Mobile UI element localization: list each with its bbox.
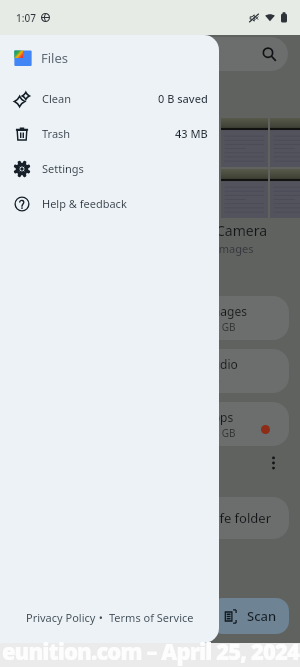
staticText: Safe folder: [205, 509, 272, 527]
button[interactable]: Audio: [155, 349, 289, 393]
button[interactable]: Trash: [0, 116, 219, 151]
staticText: 43 MB: [175, 126, 208, 141]
button[interactable]: Help & feedback: [0, 186, 219, 221]
button[interactable]: Clean: [0, 81, 219, 116]
staticText: 1.8 GB: [205, 426, 236, 440]
button[interactable]: Apps: [155, 402, 289, 446]
staticText: Trash: [42, 126, 71, 141]
staticText: Camera: [216, 221, 268, 240]
button[interactable]: Scan: [210, 598, 289, 634]
staticText: 0 B: [205, 373, 220, 387]
button[interactable]: Privacy Policy: [26, 610, 96, 625]
staticText: 1.6 GB: [205, 320, 236, 334]
button[interactable]: Search: [12, 37, 288, 71]
staticText: Files: [41, 49, 69, 67]
staticText: Settings: [42, 161, 84, 176]
staticText: Apps: [205, 409, 234, 425]
button[interactable]: Settings: [0, 151, 219, 186]
staticText: 0 B saved: [158, 91, 208, 106]
staticText: eunition.com – April 25, 2024: [1, 636, 299, 666]
staticText: Help & feedback: [42, 196, 127, 211]
button[interactable]: Images: [155, 296, 289, 340]
staticText: images: [216, 241, 254, 256]
staticText: Images: [205, 303, 247, 319]
button[interactable]: More options: [268, 455, 279, 471]
staticText: Clean: [42, 91, 71, 106]
staticText: Scan: [247, 607, 277, 625]
button[interactable]: Terms of Service: [109, 610, 194, 625]
button[interactable]: Safe folder: [155, 497, 289, 539]
staticText: •: [96, 610, 109, 625]
staticText: Audio: [205, 356, 238, 372]
staticText: 1:07: [16, 11, 36, 25]
